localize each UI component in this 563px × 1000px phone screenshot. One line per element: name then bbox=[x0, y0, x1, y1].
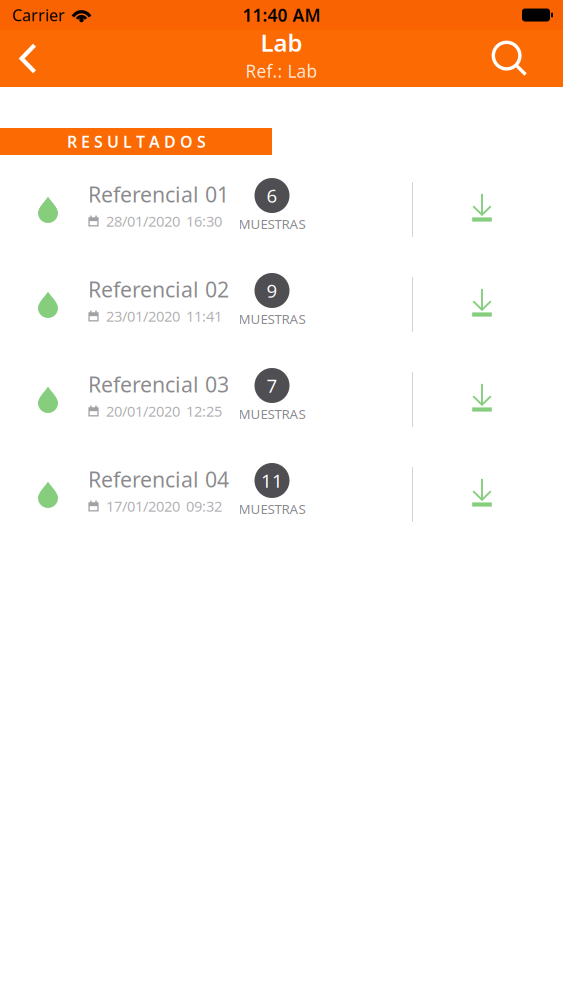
staticText: Referencial 01 bbox=[88, 180, 229, 208]
staticText: Carrier bbox=[12, 4, 65, 26]
staticText: 23/01/2020 bbox=[106, 306, 180, 326]
staticText: 20/01/2020 bbox=[106, 401, 180, 421]
staticText: MUESTRAS bbox=[238, 500, 305, 518]
button[interactable]: Referencial 02 bbox=[0, 250, 563, 345]
button[interactable]: Back bbox=[0, 30, 56, 87]
button[interactable]: Referencial 03 bbox=[0, 345, 563, 440]
staticText: Referencial 02 bbox=[88, 275, 229, 303]
staticText: 12:25 bbox=[186, 401, 222, 421]
staticText: 6 bbox=[266, 183, 277, 208]
staticText: Lab bbox=[260, 27, 302, 58]
staticText: 11 bbox=[261, 468, 283, 493]
staticText: 7 bbox=[266, 373, 277, 398]
staticText: MUESTRAS bbox=[238, 310, 305, 328]
staticText: MUESTRAS bbox=[238, 405, 305, 423]
staticText: Referencial 03 bbox=[88, 370, 229, 398]
staticText: 09:32 bbox=[186, 496, 222, 516]
staticText: 17/01/2020 bbox=[106, 496, 180, 516]
staticText: 28/01/2020 bbox=[106, 211, 180, 231]
staticText: MUESTRAS bbox=[238, 215, 305, 233]
staticText: 11:41 bbox=[186, 306, 222, 326]
staticText: 11:40 AM bbox=[242, 3, 320, 26]
button[interactable]: Referencial 01 bbox=[0, 155, 563, 250]
staticText: Referencial 04 bbox=[88, 465, 229, 493]
button[interactable]: Search bbox=[456, 30, 563, 87]
staticText: Ref.: Lab bbox=[245, 59, 317, 82]
staticText: R E S U L T A D O S bbox=[67, 131, 206, 152]
button[interactable]: Referencial 04 bbox=[0, 440, 563, 535]
staticText: 9 bbox=[266, 278, 277, 303]
staticText: 16:30 bbox=[186, 211, 222, 231]
